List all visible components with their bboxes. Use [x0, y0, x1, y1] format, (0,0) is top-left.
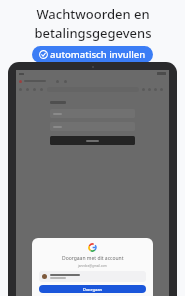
staticText: Wachtwoorden en	[36, 5, 150, 23]
other: Navigation	[26, 88, 29, 91]
button[interactable]	[50, 122, 135, 131]
button[interactable]	[50, 109, 135, 118]
button[interactable]: automatisch invullen	[32, 46, 153, 63]
staticText: Doorgaan met dit account	[62, 255, 124, 262]
button[interactable]: Doorgaan	[39, 285, 146, 293]
staticText: Doorgaan	[83, 287, 103, 292]
button[interactable]	[50, 136, 135, 145]
other: Navigation	[40, 88, 43, 91]
other: Navigation	[19, 88, 22, 91]
staticText: automatisch invullen	[50, 48, 146, 61]
staticText: janedoe@gmail.com	[78, 264, 107, 268]
button[interactable]	[39, 271, 146, 282]
staticText: betalingsgegevens	[34, 24, 152, 42]
other: Navigation	[33, 88, 36, 91]
